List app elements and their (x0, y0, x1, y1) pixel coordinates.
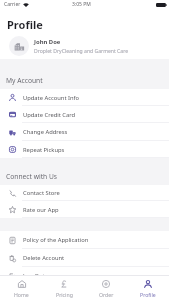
staticText: Profile (140, 291, 156, 298)
staticText: Carrier (4, 1, 21, 8)
staticText: Update Account Info (23, 94, 80, 102)
button[interactable]: Contact Store (0, 185, 169, 201)
staticText: Repeat Pickups (23, 146, 65, 154)
staticText: Profile (7, 17, 43, 31)
staticText: Policy of the Application (23, 236, 89, 244)
staticText: Rate our App (23, 206, 59, 214)
staticText: Droplet DryCleaning and Garment Care (34, 48, 129, 55)
button[interactable]: Home (0, 276, 43, 300)
staticText: Update Credit Card (23, 111, 76, 119)
staticText: John Doe (34, 38, 61, 46)
staticText: Pricing (56, 291, 73, 298)
staticText: 3:05 PM (72, 1, 91, 8)
button[interactable]: Pricing (43, 276, 85, 300)
staticText: Connect with Us (6, 172, 58, 181)
staticText: Change Address (23, 128, 68, 136)
button[interactable]: Profile (127, 276, 169, 300)
button[interactable]: Delete Account (0, 249, 169, 267)
button[interactable]: John Doe (0, 31, 169, 59)
staticText: Contact Store (23, 189, 60, 197)
button[interactable]: Log Out (0, 267, 169, 285)
staticText: Home (14, 291, 29, 298)
staticText: Delete Account (23, 254, 65, 262)
staticText: Order (99, 291, 114, 298)
staticText: My Account (6, 76, 43, 85)
button[interactable]: Order (85, 276, 127, 300)
button[interactable]: Policy of the Application (0, 231, 169, 249)
button[interactable]: Repeat Pickups (0, 141, 169, 158)
button[interactable]: Rate our App (0, 201, 169, 218)
staticText: Log Out (23, 272, 45, 280)
button[interactable]: Update Account Info (0, 89, 169, 106)
button[interactable]: Update Credit Card (0, 106, 169, 123)
button[interactable]: Change Address (0, 123, 169, 141)
